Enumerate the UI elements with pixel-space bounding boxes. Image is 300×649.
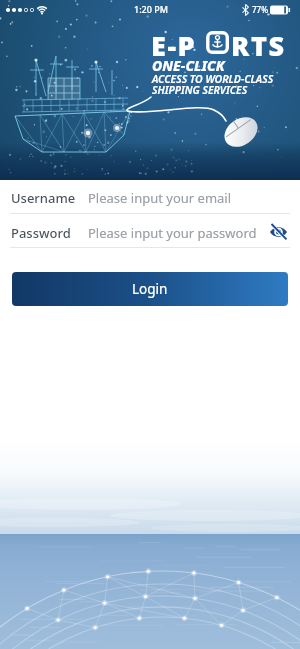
button[interactable]: Password [0, 214, 300, 247]
button[interactable]: Login [12, 272, 288, 306]
button[interactable] [269, 223, 289, 241]
staticText: Please input your email [88, 189, 232, 207]
staticText: 1:20 PM [134, 3, 168, 15]
staticText: Login [132, 280, 168, 298]
staticText: RTS [231, 27, 286, 64]
staticText: Username [11, 189, 76, 207]
staticText: E-P [151, 27, 197, 64]
staticText: ONE-CLICK [152, 56, 225, 75]
staticText: ACCESS TO WORLD-CLASS [152, 72, 274, 86]
staticText: SHIPPING SERVICES [152, 83, 248, 97]
staticText: 77% [252, 4, 268, 15]
staticText: Please input your password [88, 224, 257, 242]
button[interactable]: Username [0, 181, 300, 213]
staticText: Password [11, 224, 71, 242]
